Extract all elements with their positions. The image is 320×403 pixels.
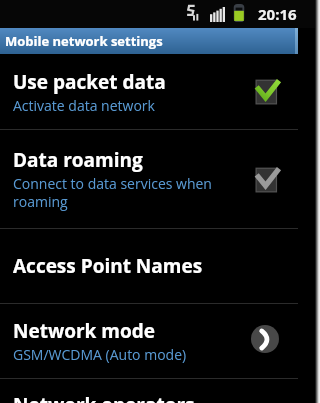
staticText: GSM/WCDMA (Auto mode) — [13, 345, 187, 364]
other: Disabled — [255, 166, 279, 193]
button[interactable]: Use packet data — [0, 54, 298, 129]
other: Enabled — [255, 78, 279, 105]
other: Signal strength — [210, 7, 225, 22]
staticText: Connect to data services when roaming — [13, 174, 228, 211]
button[interactable]: Network operators — [0, 379, 298, 403]
staticText: Data roaming — [13, 147, 143, 173]
staticText: Activate data network — [13, 96, 155, 115]
staticText: Access Point Names — [13, 253, 203, 279]
staticText: Mobile network settings — [5, 32, 163, 50]
button[interactable]: Mobile network settings — [0, 28, 298, 54]
button[interactable]: Network mode — [0, 304, 298, 378]
staticText: Network operators — [13, 392, 195, 403]
button[interactable]: Data roaming — [0, 130, 298, 228]
staticText: 20:16 — [258, 4, 297, 24]
staticText: Use packet data — [13, 69, 166, 95]
other: HSDPA — [186, 4, 200, 22]
staticText: Network mode — [13, 318, 155, 344]
other: Battery — [233, 4, 245, 22]
button[interactable]: Open network mode — [251, 325, 279, 353]
button[interactable]: Access Point Names — [0, 229, 298, 303]
